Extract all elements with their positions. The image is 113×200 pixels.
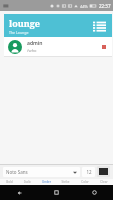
staticText: Noto Sans: [6, 169, 73, 175]
staticText: 12: [86, 169, 92, 175]
staticText: The Lounge: [9, 30, 29, 35]
staticText: Under: [42, 180, 51, 184]
button[interactable]: Close: [100, 43, 108, 51]
button[interactable]: lounge: [9, 17, 40, 35]
staticText: Bold: [6, 180, 13, 184]
button[interactable]: Home: [37, 185, 75, 200]
button[interactable]: Recent apps: [75, 185, 113, 200]
staticText: lounge: [9, 17, 40, 29]
staticText: 44%: [80, 4, 88, 9]
button[interactable]: Italic: [18, 179, 37, 185]
button[interactable]: Under: [37, 179, 56, 185]
staticText: Italic: [24, 180, 31, 184]
button[interactable]: Text colour: [97, 166, 110, 177]
staticText: Clear: [100, 180, 108, 184]
button[interactable]: Clear: [94, 179, 113, 185]
staticText: 22:37: [99, 3, 111, 9]
staticText: Strike: [61, 180, 70, 184]
staticText: Color: [81, 180, 89, 184]
button[interactable]: Noto Sans: [3, 167, 80, 177]
staticText: /who: [27, 48, 37, 53]
button[interactable]: admin: [4, 37, 112, 56]
button[interactable]: Channel list: [91, 18, 107, 34]
button[interactable]: Color: [75, 179, 94, 185]
button[interactable]: Strike: [56, 179, 75, 185]
button[interactable]: Bold: [0, 179, 18, 185]
button[interactable]: Back: [0, 185, 37, 200]
button[interactable]: 12: [82, 167, 95, 177]
staticText: admin: [27, 40, 43, 47]
